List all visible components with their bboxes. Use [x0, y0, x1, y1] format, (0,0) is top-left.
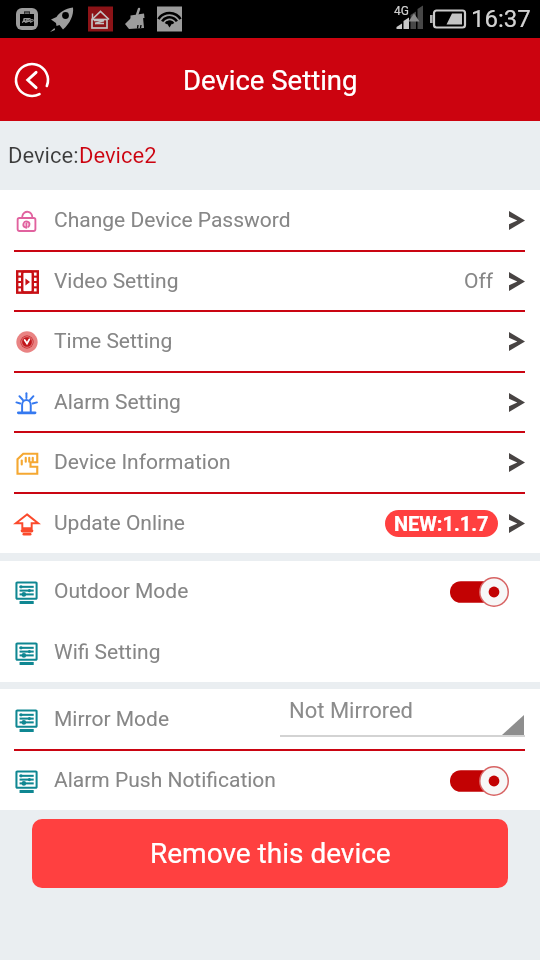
button[interactable]: Remove this device [32, 819, 508, 888]
button[interactable]: Mirror Mode [0, 689, 540, 750]
staticText: Outdoor Mode [54, 579, 189, 604]
staticText: Not Mirrored [289, 698, 414, 724]
button[interactable]: Back [10, 58, 53, 101]
staticText: Off [464, 269, 494, 294]
button[interactable]: Outdoor Mode switch, on [450, 577, 509, 607]
button[interactable]: Not Mirrored [280, 698, 525, 742]
button[interactable]: Update Online [0, 493, 540, 554]
staticText: Remove this device [150, 837, 391, 870]
button[interactable]: Video Setting [0, 251, 540, 312]
staticText: Wifi Setting [54, 640, 161, 665]
staticText: Mirror Mode [54, 707, 170, 732]
staticText: Device: [8, 143, 79, 169]
button[interactable]: Change Device Password [0, 190, 540, 251]
button[interactable]: Alarm Push Notification switch, on [450, 766, 509, 796]
button[interactable]: Device Information [0, 432, 540, 493]
staticText: Change Device Password [54, 208, 291, 233]
staticText: NEW:1.1.7 [394, 512, 489, 535]
staticText: Alarm Push Notification [54, 768, 276, 793]
staticText: Device Information [54, 450, 231, 475]
staticText: Alarm Setting [54, 390, 181, 415]
button[interactable]: Alarm Push Notification [0, 750, 540, 811]
staticText: Video Setting [54, 269, 179, 294]
staticText: Update Online [54, 511, 185, 536]
staticText: 4G [394, 4, 409, 18]
staticText: Time Setting [54, 329, 173, 354]
staticText: Device Setting [183, 64, 358, 96]
button[interactable]: Wifi Setting [0, 622, 540, 683]
staticText: Device2 [79, 143, 157, 169]
staticText: 16:37 [471, 5, 531, 33]
staticText: APP [22, 17, 34, 24]
button[interactable]: Alarm Setting [0, 372, 540, 433]
button[interactable]: Outdoor Mode [0, 561, 540, 622]
button[interactable]: Time Setting [0, 311, 540, 372]
